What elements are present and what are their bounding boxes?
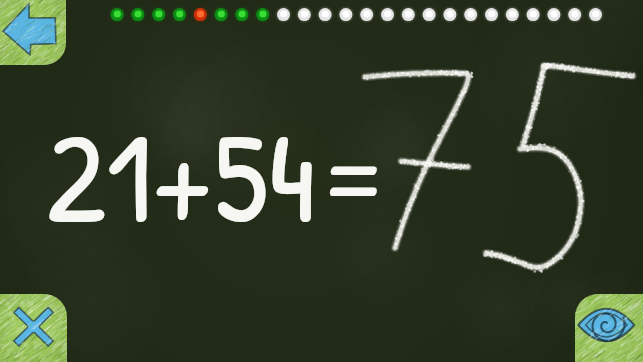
button[interactable]: Back (0, 0, 66, 65)
button[interactable]: Clear (0, 294, 67, 362)
staticText: 21+54= (46, 89, 390, 262)
button[interactable]: Show answer (575, 294, 643, 362)
